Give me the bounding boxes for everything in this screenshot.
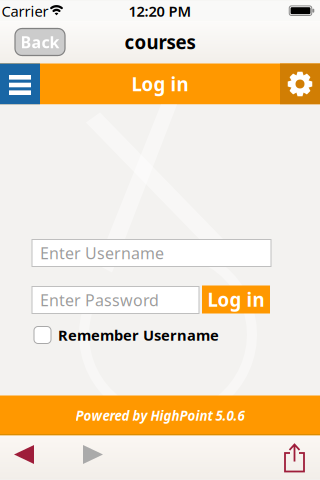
button[interactable]: Back	[10, 445, 38, 465]
staticText: Powered by HighPoint 5.0.6	[75, 407, 244, 424]
button[interactable]: Remember Username	[34, 323, 254, 347]
staticText: Enter Password	[40, 289, 159, 311]
staticText: courses	[124, 30, 195, 54]
button[interactable]: Share	[280, 441, 310, 471]
staticText: Carrier	[1, 1, 48, 21]
button[interactable]: Log in	[202, 285, 270, 313]
staticText: 12:20 PM	[128, 1, 191, 21]
staticText: Back	[20, 31, 59, 53]
button[interactable]: Back	[15, 28, 65, 55]
staticText: Enter Username	[40, 242, 164, 264]
button[interactable]: Settings	[280, 63, 320, 104]
staticText: Log in	[207, 287, 264, 312]
button[interactable]: Enter Username	[32, 239, 271, 266]
staticText: Remember Username	[58, 325, 219, 345]
button[interactable]: Menu	[0, 63, 40, 104]
button[interactable]: Forward	[79, 445, 107, 465]
staticText: Log in	[131, 72, 188, 96]
button[interactable]: Enter Password	[32, 286, 199, 313]
